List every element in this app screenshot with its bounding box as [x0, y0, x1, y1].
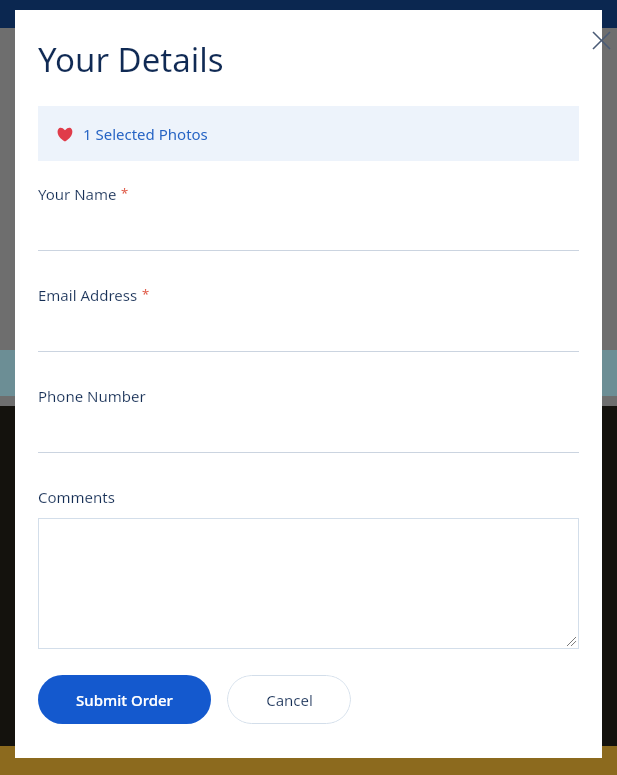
staticText: Submit Order — [76, 690, 173, 710]
staticText: Comments — [38, 487, 115, 507]
button[interactable] — [38, 518, 579, 649]
staticText: * — [142, 285, 150, 303]
staticText: Your Name — [38, 184, 117, 204]
staticText: Cancel — [266, 690, 313, 710]
staticText: Email Address — [38, 285, 138, 305]
staticText: Your Details — [38, 37, 224, 82]
staticText: Phone Number — [38, 386, 146, 406]
button[interactable]: Cancel — [227, 675, 351, 724]
staticText: * — [121, 184, 129, 202]
button[interactable]: 1 Selected Photos — [38, 106, 579, 161]
button[interactable]: Submit Order — [38, 675, 211, 724]
staticText: 1 Selected Photos — [83, 124, 208, 144]
button[interactable]: Close — [581, 20, 617, 60]
